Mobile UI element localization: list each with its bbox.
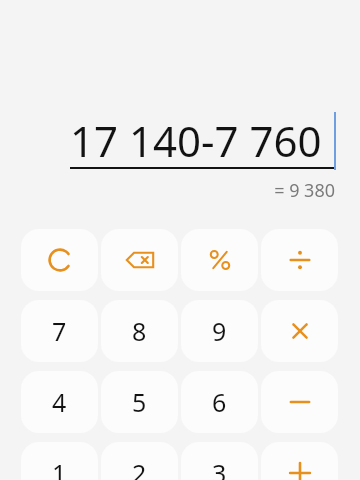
button[interactable]: 1 [21, 442, 98, 480]
button[interactable]: Multiply [261, 300, 338, 362]
button[interactable]: 5 [101, 371, 178, 433]
staticText: 7 [52, 314, 67, 348]
button[interactable]: Plus [261, 442, 338, 480]
button[interactable]: 6 [181, 371, 258, 433]
staticText: 5 [132, 385, 147, 419]
button[interactable]: 2 [101, 442, 178, 480]
staticText: 9 [212, 314, 227, 348]
staticText: 17 140-7 760 [70, 112, 322, 169]
staticText: 8 [132, 314, 147, 348]
button[interactable]: Backspace [101, 229, 178, 291]
staticText: 6 [212, 385, 227, 419]
staticText: = 9 380 [0, 178, 335, 203]
staticText: 1 [52, 456, 67, 480]
staticText: 3 [212, 456, 227, 480]
button[interactable]: 8 [101, 300, 178, 362]
staticText: 2 [132, 456, 147, 480]
staticText: 4 [52, 385, 67, 419]
button[interactable]: 3 [181, 442, 258, 480]
button[interactable]: Clear [21, 229, 98, 291]
button[interactable]: Divide [261, 229, 338, 291]
button[interactable]: Minus [261, 371, 338, 433]
button[interactable]: 9 [181, 300, 258, 362]
button[interactable]: 4 [21, 371, 98, 433]
button[interactable]: Percent [181, 229, 258, 291]
button[interactable]: 7 [21, 300, 98, 362]
